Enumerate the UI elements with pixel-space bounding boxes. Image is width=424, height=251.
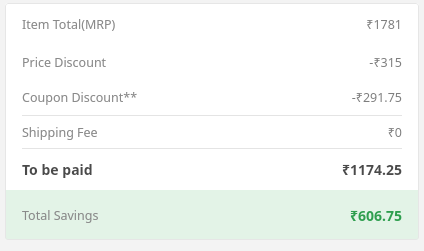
staticText: Shipping Fee — [22, 124, 98, 141]
button[interactable]: To be paid — [5, 149, 419, 190]
staticText: -₹291.75 — [351, 89, 402, 106]
staticText: ₹606.75 — [350, 206, 402, 225]
button[interactable]: Item Total(MRP) — [5, 3, 419, 45]
button[interactable]: Coupon Discount** — [5, 80, 419, 115]
staticText: Price Discount — [22, 54, 107, 71]
staticText: Total Savings — [22, 207, 99, 224]
button[interactable]: Shipping Fee — [5, 116, 419, 148]
staticText: Coupon Discount** — [22, 89, 138, 106]
button[interactable]: Total Savings — [5, 190, 419, 240]
staticText: To be paid — [22, 160, 93, 179]
staticText: -₹315 — [369, 54, 402, 71]
staticText: ₹0 — [387, 124, 402, 141]
staticText: ₹1781 — [366, 16, 402, 33]
button[interactable]: Price Discount — [5, 45, 419, 80]
staticText: ₹1174.25 — [342, 160, 402, 179]
staticText: Item Total(MRP) — [22, 16, 116, 33]
